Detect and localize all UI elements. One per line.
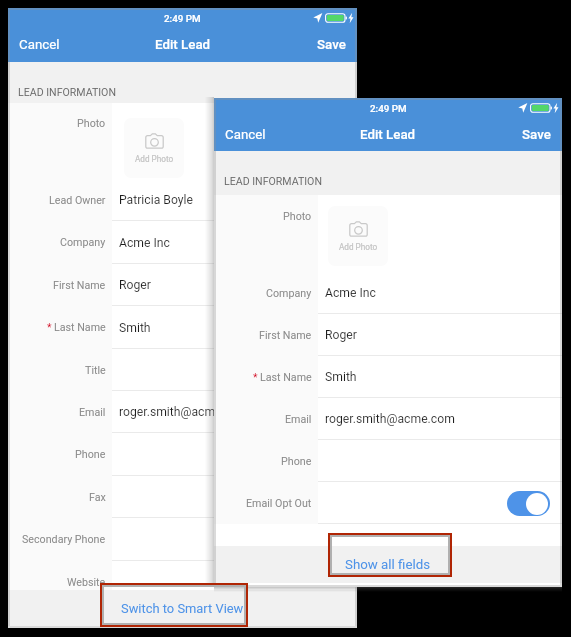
staticText: Cancel bbox=[19, 37, 60, 53]
staticText: Last Name bbox=[54, 321, 106, 334]
button[interactable]: Cancel bbox=[8, 28, 71, 62]
staticText: Company bbox=[266, 287, 312, 300]
button[interactable]: First Name bbox=[214, 314, 562, 356]
button[interactable]: Email bbox=[8, 391, 357, 433]
staticText: roger.smith@acme.com bbox=[325, 412, 455, 426]
staticText: Smith bbox=[325, 370, 357, 384]
staticText: Email Opt Out bbox=[246, 497, 312, 510]
button[interactable]: First Name bbox=[8, 264, 357, 306]
button[interactable]: Secondary Phone bbox=[8, 518, 357, 561]
button[interactable]: Lead Owner bbox=[8, 179, 357, 221]
staticText: Patricia Boyle bbox=[119, 193, 193, 207]
button[interactable]: Switch to Smart View bbox=[103, 594, 262, 623]
staticText: Edit Lead bbox=[155, 37, 211, 53]
button[interactable]: Company bbox=[8, 221, 357, 264]
button[interactable]: Title bbox=[8, 349, 357, 391]
button[interactable]: Fax bbox=[8, 476, 357, 518]
staticText: Acme Inc bbox=[325, 286, 376, 300]
staticText: Show all fields bbox=[345, 557, 431, 573]
staticText: Email bbox=[79, 406, 106, 419]
staticText: Add Photo bbox=[135, 154, 174, 164]
button[interactable]: Cancel bbox=[214, 118, 277, 151]
staticText: Secondary Phone bbox=[22, 533, 106, 546]
button[interactable]: Company bbox=[214, 272, 562, 314]
staticText: Fax bbox=[89, 491, 106, 504]
staticText: Switch to Smart View bbox=[121, 601, 244, 616]
button[interactable]: Email bbox=[214, 398, 562, 440]
staticText: Email bbox=[285, 413, 312, 426]
button[interactable]: Email Opt Out bbox=[214, 482, 562, 524]
staticText: Acme Inc bbox=[119, 236, 170, 250]
button[interactable]: Phone bbox=[8, 433, 357, 476]
button[interactable]: Add Photo bbox=[328, 206, 388, 266]
staticText: 2:49 PM bbox=[164, 13, 201, 24]
button[interactable]: * bbox=[214, 356, 562, 398]
staticText: Phone bbox=[75, 448, 106, 461]
staticText: First Name bbox=[53, 279, 106, 292]
staticText: Add Photo bbox=[339, 242, 378, 252]
staticText: Last Name bbox=[260, 371, 312, 384]
button[interactable]: Phone bbox=[214, 440, 562, 482]
staticText: Save bbox=[522, 127, 551, 143]
staticText: Smith bbox=[119, 321, 151, 335]
staticText: Lead Owner bbox=[49, 194, 106, 207]
staticText: Company bbox=[60, 236, 106, 249]
button[interactable]: Email Opt Out bbox=[507, 491, 550, 516]
staticText: 2:49 PM bbox=[370, 103, 407, 114]
staticText: Roger bbox=[119, 278, 151, 292]
staticText: LEAD INFORMATION bbox=[18, 86, 116, 98]
button[interactable]: Save bbox=[511, 118, 562, 151]
staticText: Photo bbox=[283, 210, 312, 223]
staticText: Save bbox=[317, 37, 346, 53]
staticText: LEAD INFORMATION bbox=[224, 175, 322, 187]
staticText: Phone bbox=[281, 455, 312, 468]
staticText: * bbox=[47, 321, 52, 334]
staticText: * bbox=[253, 371, 258, 384]
staticText: roger.smith@acme.com bbox=[119, 405, 249, 419]
staticText: Edit Lead bbox=[360, 127, 416, 143]
button[interactable]: Add Photo bbox=[124, 118, 184, 178]
button[interactable]: Website bbox=[8, 561, 357, 603]
button[interactable]: * bbox=[8, 306, 357, 349]
staticText: Roger bbox=[325, 328, 357, 342]
staticText: Cancel bbox=[225, 127, 266, 143]
staticText: Photo bbox=[77, 117, 106, 130]
staticText: Title bbox=[85, 364, 106, 377]
staticText: Website bbox=[67, 576, 106, 589]
button[interactable]: Show all fields bbox=[327, 550, 449, 580]
staticText: First Name bbox=[259, 329, 312, 342]
button[interactable]: Save bbox=[306, 28, 357, 62]
